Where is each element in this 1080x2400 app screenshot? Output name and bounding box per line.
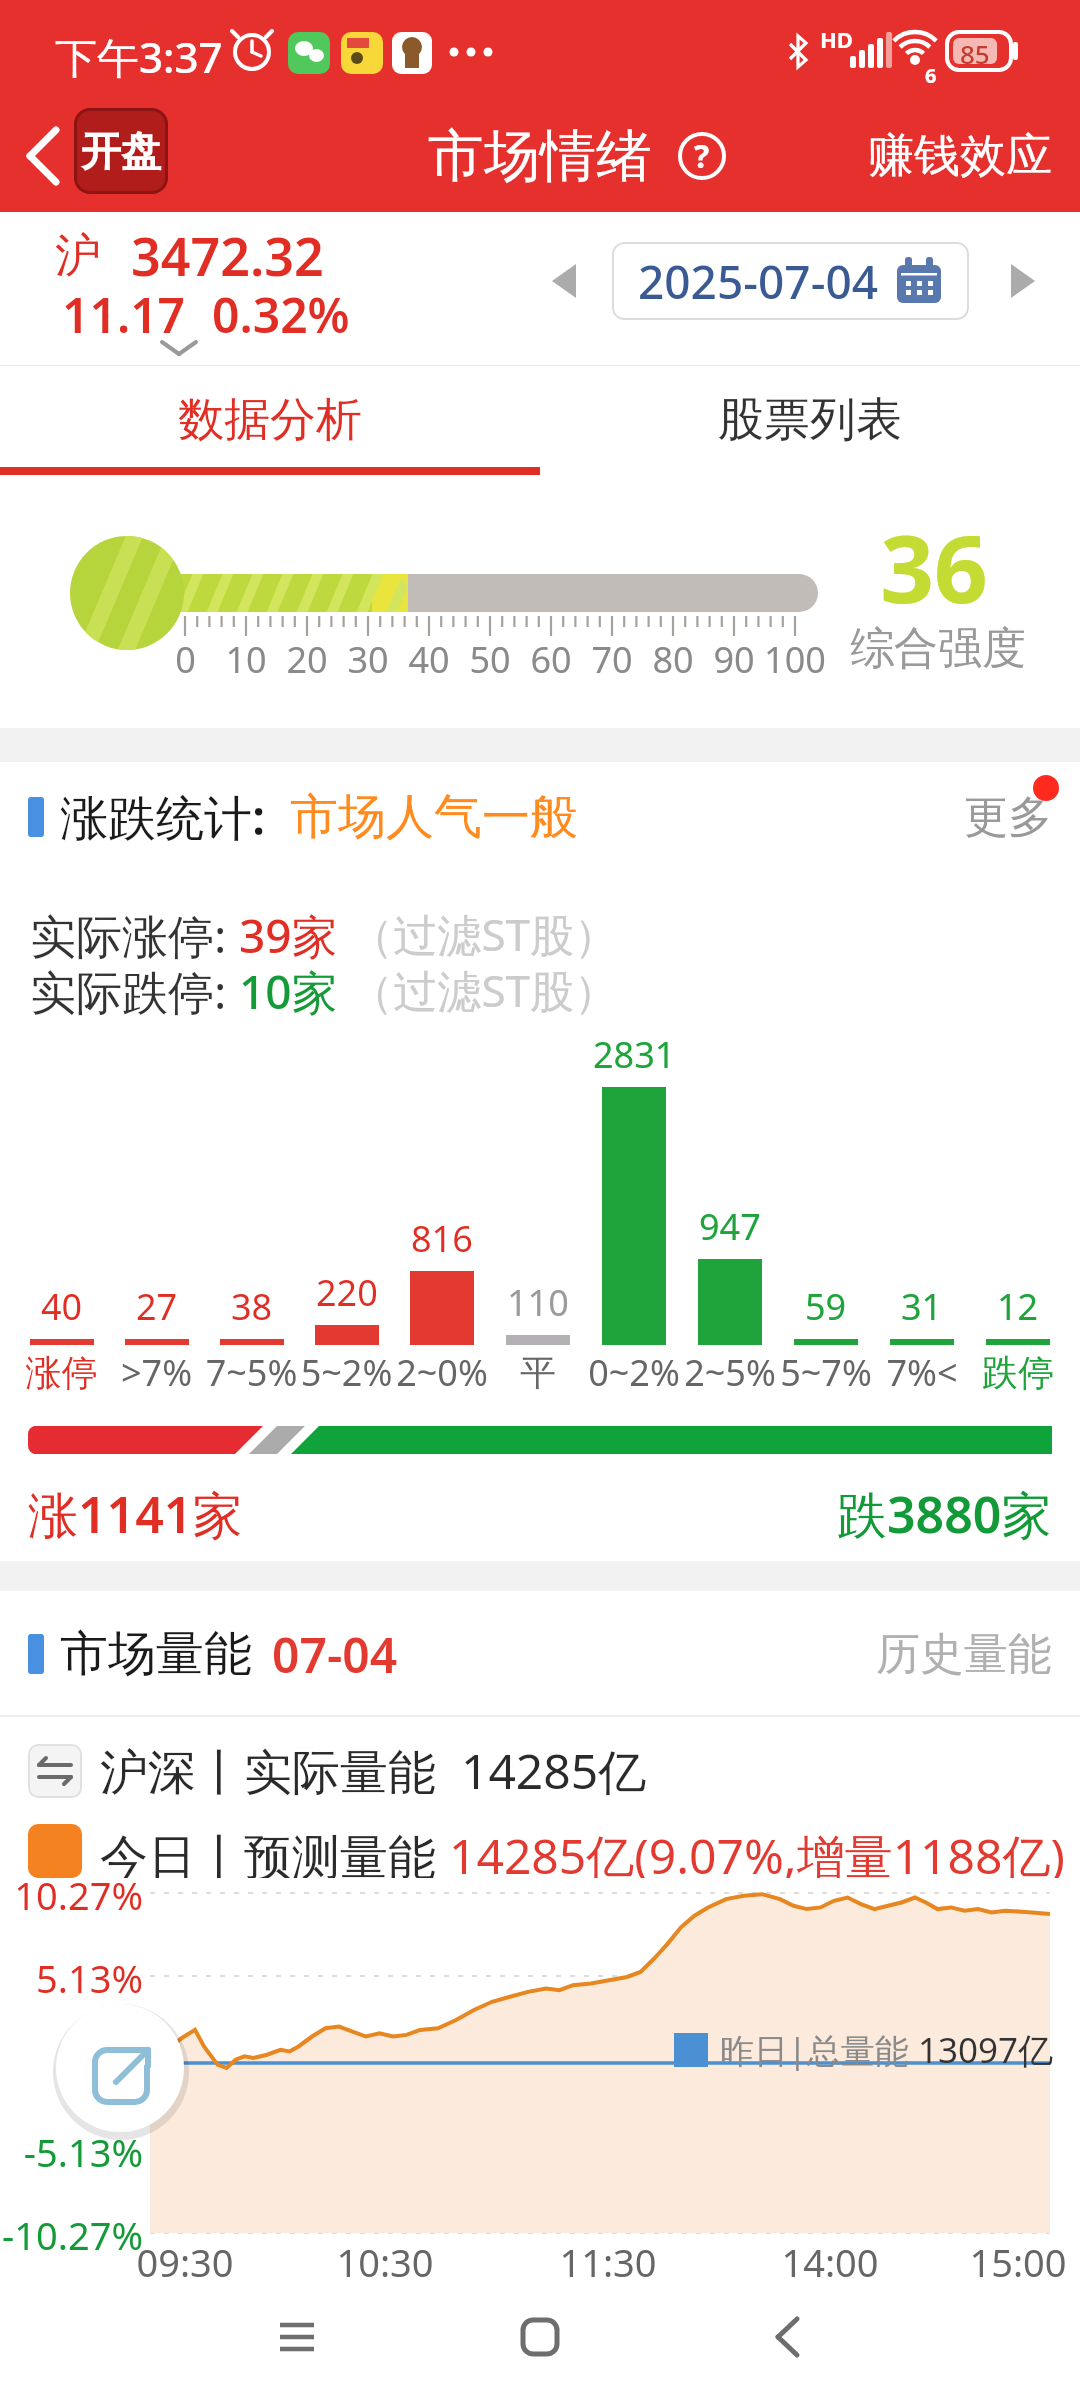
- staticText: 赚钱效应: [868, 127, 1052, 185]
- staticText: 85: [960, 36, 990, 71]
- staticText: 跌3880家: [837, 1480, 1052, 1548]
- staticText: 6: [925, 62, 937, 89]
- staticText: （过滤ST股）: [338, 960, 619, 1016]
- button[interactable]: 2025-07-04: [612, 242, 969, 320]
- staticText: 38: [231, 1282, 273, 1331]
- staticText: 59: [805, 1282, 847, 1331]
- staticText: 7%<: [874, 1348, 970, 1397]
- staticText: 涨1141家: [28, 1480, 243, 1548]
- staticText: HD: [820, 24, 853, 54]
- staticText: 09:30: [136, 2236, 234, 2288]
- staticText: 11:30: [559, 2236, 657, 2288]
- staticText: 12: [997, 1282, 1039, 1331]
- staticText: 31: [901, 1282, 943, 1331]
- staticText: 220: [316, 1268, 378, 1317]
- staticText: 10: [225, 635, 267, 684]
- staticText: 涨停: [14, 1350, 109, 1395]
- staticText: 平: [490, 1350, 586, 1395]
- staticText: 市场情绪: [428, 121, 652, 192]
- staticText: 5~7%: [778, 1348, 874, 1397]
- staticText: 11.17: [62, 282, 186, 347]
- staticText: -10.27%: [2, 2209, 143, 2261]
- staticText: 110: [507, 1278, 569, 1327]
- button[interactable]: 历史量能: [876, 1627, 1052, 1682]
- staticText: 2~5%: [682, 1348, 778, 1397]
- staticText: 27: [136, 1282, 178, 1331]
- staticText: 昨日|总量能: [720, 2027, 918, 2073]
- staticText: 14:00: [781, 2236, 879, 2288]
- staticText: 更多: [964, 790, 1052, 845]
- staticText: 20: [286, 635, 328, 684]
- staticText: 816: [411, 1214, 473, 1263]
- button[interactable]: [1005, 260, 1041, 302]
- staticText: 市场量能: [60, 1624, 252, 1684]
- staticText: 14285亿(9.07%,增量1188亿): [449, 1823, 1065, 1878]
- staticText: 15:00: [969, 2236, 1067, 2288]
- staticText: 5.13%: [36, 1952, 143, 2004]
- staticText: >7%: [109, 1348, 204, 1397]
- button[interactable]: 更多: [964, 790, 1052, 845]
- staticText: 股票列表: [718, 391, 902, 449]
- button[interactable]: [16, 120, 72, 192]
- staticText: 39家: [239, 904, 338, 960]
- button[interactable]: [257, 2297, 337, 2377]
- staticText: 0~2%: [586, 1348, 682, 1397]
- staticText: 70: [591, 635, 633, 684]
- staticText: 40: [41, 1282, 83, 1331]
- staticText: 7~5%: [204, 1348, 299, 1397]
- staticText: 2025-07-04: [638, 250, 879, 313]
- staticText: 5~2%: [299, 1348, 394, 1397]
- staticText: （过滤ST股）: [338, 904, 619, 960]
- staticText: 今日丨预测量能: [100, 1823, 449, 1878]
- staticText: 36: [880, 503, 988, 631]
- staticText: 50: [469, 635, 511, 684]
- button[interactable]: 赚钱效应: [868, 127, 1052, 185]
- staticText: 40: [408, 635, 450, 684]
- staticText: 下午3:37: [55, 28, 223, 85]
- button[interactable]: [747, 2297, 827, 2377]
- staticText: 3472.32: [131, 220, 324, 291]
- staticText: 2831: [593, 1030, 676, 1079]
- staticText: 综合强度: [850, 621, 1026, 676]
- staticText: 60: [530, 635, 572, 684]
- staticText: ?: [694, 134, 710, 178]
- button[interactable]: 数据分析: [0, 365, 540, 475]
- staticText: 沪: [55, 227, 101, 285]
- staticText: 跌停: [970, 1350, 1066, 1395]
- staticText: 90: [713, 635, 755, 684]
- staticText: 市场人气一般: [290, 787, 578, 847]
- staticText: 10:30: [336, 2236, 434, 2288]
- staticText: 13097亿: [918, 2026, 1054, 2074]
- staticText: 涨跌统计:: [60, 784, 266, 850]
- staticText: 80: [652, 635, 694, 684]
- staticText: 数据分析: [178, 391, 362, 449]
- staticText: 07-04: [272, 1622, 398, 1687]
- staticText: 947: [699, 1202, 761, 1251]
- staticText: 实际跌停:: [30, 960, 239, 1016]
- staticText: 10家: [239, 960, 338, 1016]
- staticText: 2~0%: [394, 1348, 490, 1397]
- button[interactable]: [546, 260, 582, 302]
- button[interactable]: 开盘: [74, 108, 168, 194]
- button[interactable]: 股票列表: [540, 365, 1080, 475]
- staticText: 30: [347, 635, 389, 684]
- button[interactable]: ?: [678, 132, 726, 180]
- staticText: 10.27%: [14, 1869, 143, 1921]
- staticText: 100: [764, 635, 826, 684]
- staticText: 历史量能: [876, 1627, 1052, 1682]
- button[interactable]: [28, 1744, 82, 1798]
- button[interactable]: [56, 2004, 184, 2132]
- staticText: 0: [175, 635, 196, 684]
- button[interactable]: [500, 2297, 580, 2377]
- staticText: 实际涨停:: [30, 904, 239, 960]
- staticText: 0.32%: [212, 282, 350, 347]
- staticText: 沪深丨实际量能 14285亿: [100, 1738, 647, 1804]
- staticText: 开盘: [81, 126, 161, 176]
- staticText: -5.13%: [23, 2126, 143, 2178]
